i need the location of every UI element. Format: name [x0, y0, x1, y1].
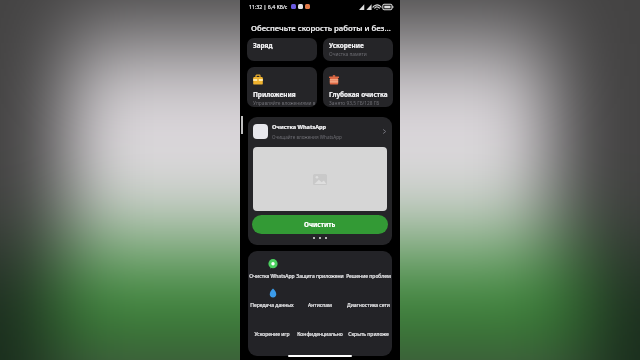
button[interactable]: Решение проблем [344, 256, 392, 285]
staticText: Конфиденциально [297, 331, 343, 338]
button[interactable]: Защита приложени [296, 256, 344, 285]
button[interactable]: Приложения [247, 67, 317, 107]
staticText: Управляйте вложениями в приложениях [253, 100, 317, 107]
staticText: Занято 93,5 ГБ/128 ГБ [329, 100, 380, 107]
button[interactable]: Очистка WhatsApp [248, 117, 392, 145]
staticText: Ускорение игр [254, 331, 290, 338]
staticText: Скрыть приложе [348, 331, 389, 338]
button[interactable]: Передача данных [248, 285, 296, 314]
staticText: Очистка памяти [329, 51, 367, 58]
button[interactable]: Конфиденциально [296, 314, 344, 343]
staticText: Передача данных [250, 302, 294, 309]
staticText: Глубокая очистка [329, 90, 388, 99]
button[interactable]: Очистка WhatsApp [248, 256, 296, 285]
staticText: Решение проблем [346, 273, 391, 280]
staticText: Обеспечьте скорость работы и без… [251, 23, 391, 34]
staticText: Очищайте вложения WhatsApp [272, 134, 342, 140]
button[interactable]: Диагностика сети [344, 285, 392, 314]
staticText: Ускорение [329, 41, 364, 50]
button[interactable]: Заряд [247, 38, 317, 61]
staticText: Диагностика сети [347, 302, 390, 309]
button[interactable]: Очистить [252, 215, 388, 234]
staticText: Заряд [253, 41, 273, 50]
staticText: 11:32 | 6,4 КБ/c [249, 3, 288, 10]
other: Открыть [381, 128, 388, 135]
staticText: Приложения [253, 90, 296, 99]
staticText: Очистить [304, 220, 336, 229]
button[interactable]: Антиспам [296, 285, 344, 314]
staticText: Антиспам [308, 302, 332, 309]
button[interactable]: Ускорение игр [248, 314, 296, 343]
button[interactable]: Глубокая очистка [323, 67, 393, 107]
staticText: Очистка WhatsApp [249, 273, 295, 280]
button[interactable]: Ускорение [323, 38, 393, 61]
staticText: Защита приложени [296, 273, 344, 280]
staticText: Очистка WhatsApp [272, 123, 327, 131]
button[interactable]: Скрыть приложе [344, 314, 392, 343]
